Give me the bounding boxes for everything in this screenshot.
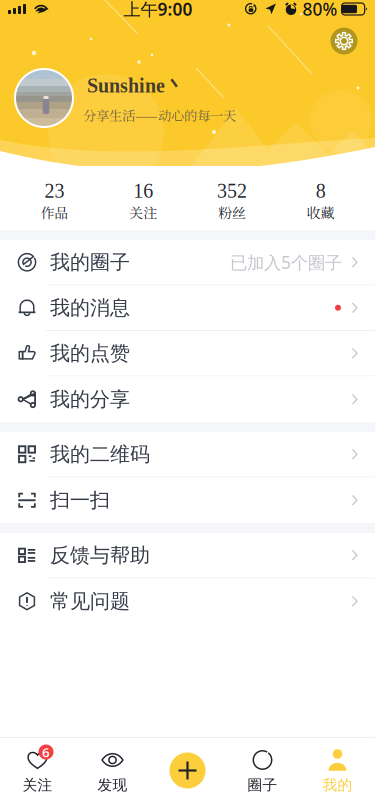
staticText: 发现 <box>97 776 127 794</box>
staticText: 我的消息 <box>50 295 130 320</box>
staticText: 352 <box>217 180 247 202</box>
button[interactable]: 16 <box>99 168 188 230</box>
staticText: 圈子 <box>247 776 277 794</box>
staticText: 我的圈子 <box>50 250 130 275</box>
staticText: 8 <box>316 180 326 202</box>
staticText: 6 <box>42 743 50 761</box>
staticText: 关注 <box>129 202 157 222</box>
staticText: 我的 <box>322 776 352 794</box>
button[interactable]: 8 <box>276 168 365 230</box>
staticText: 我的二维码 <box>50 442 150 467</box>
staticText: 我的分享 <box>50 387 130 412</box>
staticText: 反馈与帮助 <box>50 543 150 568</box>
staticText: 扫一扫 <box>50 488 110 513</box>
button[interactable]: 6 <box>0 738 75 803</box>
staticText: 常见问题 <box>50 589 130 614</box>
staticText: 16 <box>133 180 153 202</box>
button[interactable]: 我的消息 <box>0 285 375 331</box>
button[interactable]: 我的 <box>300 738 375 803</box>
staticText: 已加入5个圈子 <box>230 251 342 274</box>
button[interactable]: 352 <box>187 168 276 230</box>
button[interactable]: 设置 <box>327 24 361 58</box>
button[interactable]: 新建 <box>150 738 225 803</box>
button[interactable]: 我的圈子 <box>0 240 375 285</box>
button[interactable]: 我的分享 <box>0 376 375 422</box>
button[interactable]: 扫一扫 <box>0 477 375 523</box>
button[interactable]: 23 <box>10 168 99 230</box>
button[interactable]: 反馈与帮助 <box>0 533 375 578</box>
button[interactable]: 我的点赞 <box>0 331 375 376</box>
staticText: 收藏 <box>307 202 335 222</box>
staticText: 作品 <box>40 202 68 222</box>
staticText: 上午9:00 <box>123 0 192 20</box>
staticText: 粉丝 <box>218 202 246 222</box>
staticText: 分享生活——动心的每一天 <box>83 105 236 125</box>
button[interactable]: 圈子 <box>225 738 300 803</box>
staticText: 我的点赞 <box>50 341 130 366</box>
staticText: 23 <box>44 180 64 202</box>
staticText: 80% <box>302 0 337 20</box>
button[interactable]: 我的二维码 <box>0 432 375 477</box>
staticText: 关注 <box>22 776 52 794</box>
button[interactable]: 发现 <box>75 738 150 803</box>
button[interactable]: 常见问题 <box>0 578 375 624</box>
staticText: Sunshine丶 <box>87 73 185 98</box>
